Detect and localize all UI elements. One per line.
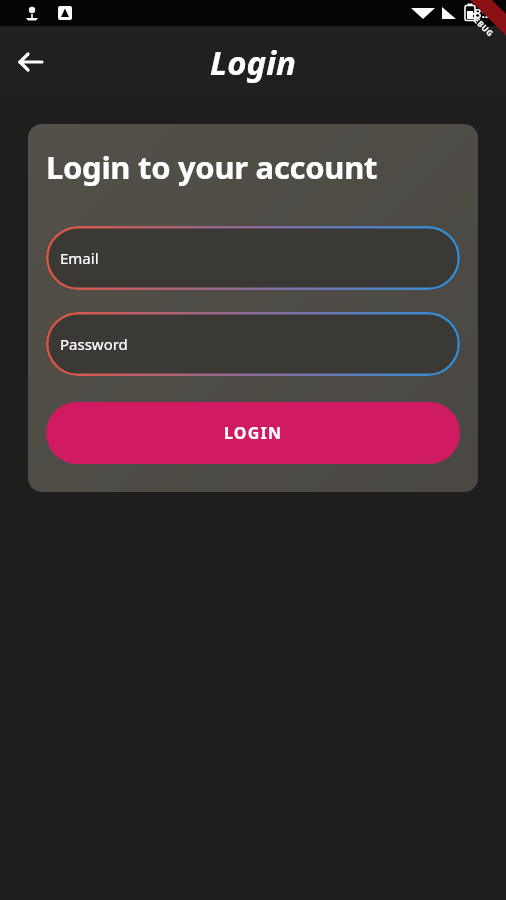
button[interactable]: Back [10,41,52,83]
staticText: LOGIN [224,422,283,444]
staticText: Login to your account [46,146,378,188]
staticText: 8:20 [474,4,500,22]
staticText: Password [60,334,128,354]
button[interactable]: Password [46,312,460,376]
button[interactable]: Email [46,226,460,290]
button[interactable]: LOGIN [46,402,460,464]
staticText: DEBUG [467,10,496,39]
staticText: Email [60,248,99,268]
staticText: Login [210,40,296,85]
